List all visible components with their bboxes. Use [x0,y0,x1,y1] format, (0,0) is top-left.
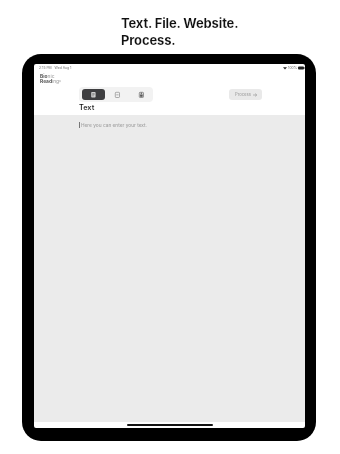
staticText: Text. File. Website. Process. [121,15,239,48]
staticText: 100% [288,66,297,70]
staticText: Reading® [40,78,61,84]
staticText: Text [79,103,95,112]
button[interactable] [82,89,105,100]
staticText: 2:15 PM Wed Aug 1 [39,66,72,70]
staticText: Process [235,92,251,97]
button[interactable] [129,87,153,102]
staticText: Here you can enter your text. [81,122,148,128]
staticText: Bionic [40,73,55,79]
button[interactable]: Process [229,89,262,100]
button[interactable] [105,87,129,102]
